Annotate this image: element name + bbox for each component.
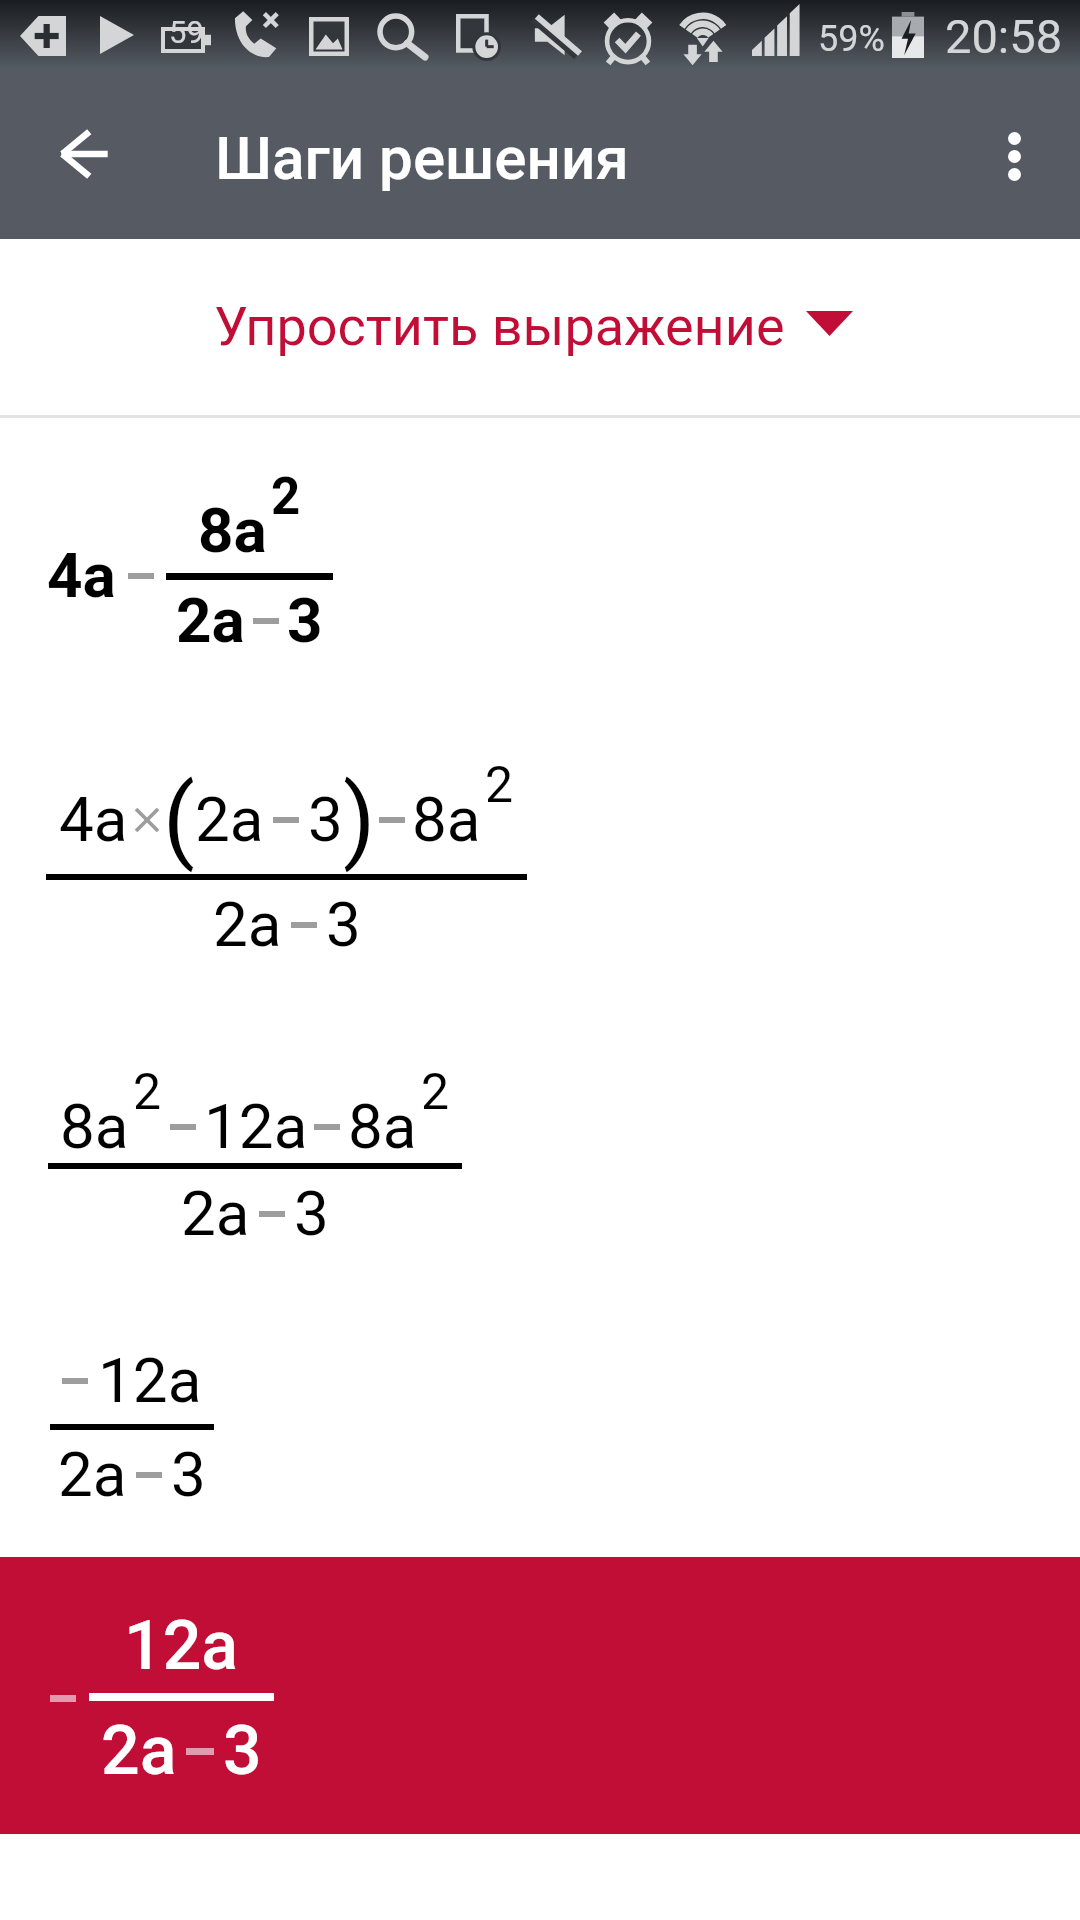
staticText: Упростить выражение <box>214 295 785 358</box>
staticText: 2 <box>421 1063 450 1122</box>
staticText: 2a <box>181 1177 250 1250</box>
staticText: ( <box>163 765 195 874</box>
button[interactable]: 12a <box>0 1557 1080 1834</box>
staticText: 59% <box>818 18 885 60</box>
staticText: 3 <box>326 888 361 961</box>
staticText: 59 <box>169 14 204 50</box>
staticText: ) <box>343 765 376 874</box>
staticText: 8a <box>412 783 481 856</box>
staticText: 3 <box>287 584 323 657</box>
staticText: 2a <box>58 1438 127 1511</box>
staticText: 4a <box>59 783 128 856</box>
staticText: 8a <box>198 494 267 567</box>
staticText: 3 <box>308 783 343 856</box>
staticText: 12a <box>98 1344 202 1417</box>
staticText: 3 <box>171 1438 206 1511</box>
staticText: 2a <box>176 584 245 657</box>
button[interactable]: Упростить выражение <box>0 239 1080 415</box>
staticText: 4a <box>47 539 116 612</box>
staticText: 2 <box>133 1063 162 1122</box>
staticText: 2a <box>195 783 264 856</box>
staticText: 8a <box>60 1090 129 1163</box>
staticText: 12a <box>124 1606 239 1686</box>
staticText: 2a <box>101 1711 177 1791</box>
staticText: 2a <box>213 888 282 961</box>
button[interactable]: Back <box>18 68 150 239</box>
staticText: 12a <box>204 1090 308 1163</box>
staticText: 20:58 <box>945 9 1063 64</box>
button[interactable]: More options <box>948 71 1080 242</box>
staticText: 3 <box>223 1711 262 1791</box>
staticText: 3 <box>294 1177 329 1250</box>
staticText: 2 <box>485 756 514 815</box>
staticText: 2 <box>271 467 301 527</box>
staticText: 8a <box>348 1090 417 1163</box>
staticText: Шаги решения <box>215 123 629 193</box>
